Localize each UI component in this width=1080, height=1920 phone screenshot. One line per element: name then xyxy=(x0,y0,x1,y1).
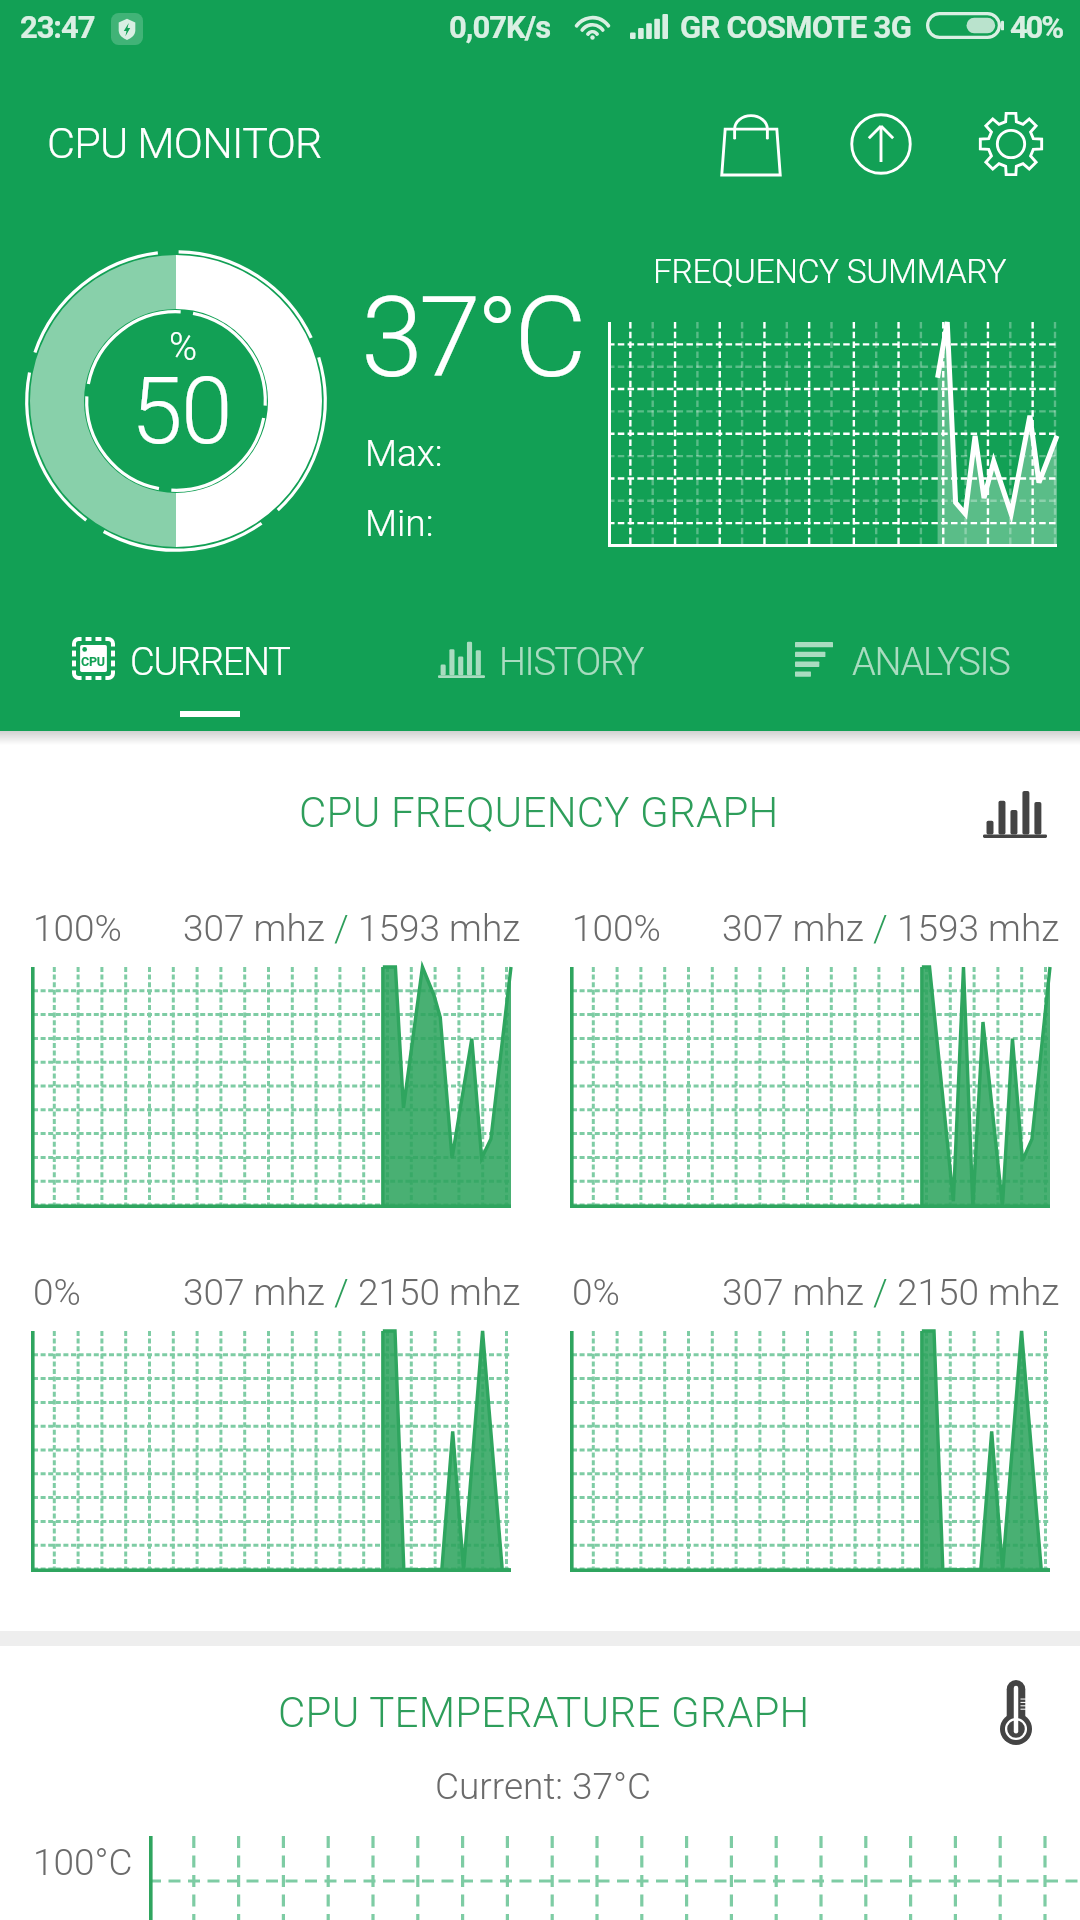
button[interactable]: Settings xyxy=(966,99,1056,189)
staticText: CPU TEMPERATURE GRAPH xyxy=(278,1688,810,1737)
staticText: CPU MONITOR xyxy=(47,118,322,168)
staticText: CPU FREQUENCY GRAPH xyxy=(299,788,779,837)
staticText: 23:47 xyxy=(20,9,95,45)
staticText: Max: xyxy=(365,432,443,475)
staticText: ANALYSIS xyxy=(852,640,1010,685)
button[interactable]: Temperature graph options xyxy=(1000,1680,1032,1745)
staticText: 307 mhz xyxy=(183,907,325,950)
button[interactable]: ANALYSIS xyxy=(775,617,1035,701)
staticText: 1593 mhz xyxy=(358,907,521,950)
staticText: / xyxy=(864,1271,897,1314)
staticText: % xyxy=(169,325,198,370)
staticText: / xyxy=(325,1271,358,1314)
button[interactable]: Store xyxy=(706,99,796,189)
staticText: / xyxy=(325,907,358,950)
staticText: 100°C xyxy=(33,1841,133,1884)
staticText: 307 mhz xyxy=(722,1271,864,1314)
staticText: CPU xyxy=(81,654,105,669)
staticText: 50 xyxy=(131,357,232,466)
button[interactable]: CPU xyxy=(52,617,312,701)
staticText: 1593 mhz xyxy=(897,907,1060,950)
staticText: 2150 mhz xyxy=(897,1271,1060,1314)
button[interactable]: Upgrade xyxy=(836,99,926,189)
staticText: Current: 37°C xyxy=(435,1765,652,1808)
staticText: 307 mhz xyxy=(183,1271,325,1314)
button[interactable]: HISTORY xyxy=(420,617,660,701)
staticText: 0% xyxy=(33,1271,81,1314)
staticText: 40% xyxy=(1010,9,1062,45)
button[interactable]: Frequency graph options xyxy=(983,790,1047,838)
staticText: / xyxy=(864,907,897,950)
staticText: 37°C xyxy=(361,272,583,403)
staticText: 307 mhz xyxy=(722,907,864,950)
staticText: 2150 mhz xyxy=(358,1271,521,1314)
staticText: 100% xyxy=(33,907,122,950)
staticText: HISTORY xyxy=(499,640,644,685)
staticText: Min: xyxy=(365,502,434,545)
staticText: FREQUENCY SUMMARY xyxy=(653,252,1007,291)
staticText: 0,07K/s xyxy=(449,9,551,45)
staticText: GR COSMOTE 3G xyxy=(680,9,912,45)
staticText: CURRENT xyxy=(130,640,290,685)
staticText: 100% xyxy=(572,907,661,950)
staticText: 0% xyxy=(572,1271,620,1314)
